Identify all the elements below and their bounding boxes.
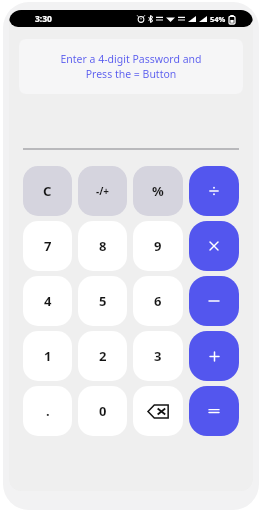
staticText: 7 (44, 237, 52, 255)
button[interactable]: % (133, 166, 183, 216)
staticText: % (152, 182, 164, 200)
staticText: 5 (99, 292, 107, 310)
button[interactable]: 6 (133, 276, 183, 326)
button[interactable]: 0 (78, 386, 127, 436)
button[interactable]: 9 (133, 221, 183, 271)
button[interactable] (189, 386, 239, 436)
staticText: 2 (99, 347, 107, 365)
staticText: 3 (154, 347, 162, 365)
staticText: 8 (99, 237, 107, 255)
button[interactable]: -/+ (78, 166, 127, 216)
button[interactable]: 1 (23, 331, 72, 381)
staticText: 9 (154, 237, 162, 255)
button[interactable] (189, 221, 239, 271)
button[interactable]: Backspace (133, 386, 183, 436)
staticText: 4 (44, 292, 52, 310)
button[interactable]: 3 (133, 331, 183, 381)
staticText: -/+ (96, 184, 110, 198)
button[interactable] (189, 276, 239, 326)
button[interactable]: 5 (78, 276, 127, 326)
staticText: 54% (210, 14, 226, 24)
staticText: C (43, 182, 52, 200)
button[interactable]: 8 (78, 221, 127, 271)
staticText: Enter a 4-digit Password and Press the =… (60, 52, 202, 81)
button[interactable] (189, 166, 239, 216)
staticText: 1 (44, 347, 52, 365)
button[interactable]: . (23, 386, 72, 436)
staticText: 6 (154, 292, 162, 310)
button[interactable]: 4 (23, 276, 72, 326)
button[interactable]: 7 (23, 221, 72, 271)
staticText: 0 (99, 402, 107, 420)
button[interactable] (189, 331, 239, 381)
staticText: 3:30 (35, 13, 52, 25)
staticText: . (46, 402, 50, 420)
button[interactable]: C (23, 166, 72, 216)
button[interactable]: 2 (78, 331, 127, 381)
